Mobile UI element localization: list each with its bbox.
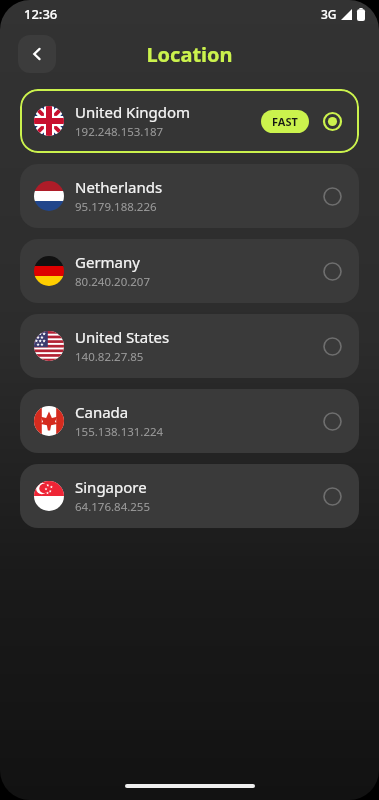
staticText: United Kingdom — [75, 102, 191, 122]
staticText: 64.176.84.255 — [75, 499, 151, 515]
staticText: Germany — [75, 252, 140, 272]
button[interactable]: Germany — [20, 239, 359, 303]
button[interactable]: Back — [18, 35, 56, 73]
button[interactable]: United Kingdom — [20, 89, 359, 153]
staticText: 155.138.131.224 — [75, 424, 164, 440]
staticText: 12:36 — [24, 5, 58, 23]
staticText: Singapore — [75, 477, 147, 497]
staticText: 95.179.188.226 — [75, 199, 157, 215]
button[interactable] — [319, 408, 345, 434]
button[interactable] — [319, 258, 345, 284]
staticText: Canada — [75, 402, 129, 422]
button[interactable] — [319, 108, 345, 134]
button[interactable] — [319, 333, 345, 359]
staticText: Netherlands — [75, 177, 163, 197]
staticText: 3G — [321, 6, 337, 22]
button[interactable]: Netherlands — [20, 164, 359, 228]
button[interactable]: United States — [20, 314, 359, 378]
button[interactable]: Singapore — [20, 464, 359, 528]
button[interactable] — [319, 483, 345, 509]
staticText: Location — [146, 41, 233, 68]
staticText: 192.248.153.187 — [75, 124, 164, 140]
staticText: 80.240.20.207 — [75, 274, 151, 290]
button[interactable]: Canada — [20, 389, 359, 453]
button[interactable] — [319, 183, 345, 209]
staticText: 140.82.27.85 — [75, 349, 144, 365]
staticText: FAST — [272, 114, 298, 129]
staticText: United States — [75, 327, 170, 347]
